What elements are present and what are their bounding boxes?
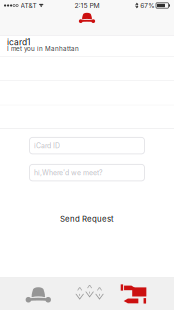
staticText: icard1	[7, 37, 30, 47]
button[interactable]: Send Request	[29, 212, 144, 226]
staticText: AT&T	[21, 1, 37, 9]
staticText: iCard ID	[34, 141, 60, 150]
button[interactable]: icard1	[0, 35, 174, 56]
staticText: I met you in Manhattan	[7, 45, 79, 53]
staticText: hi,Where'd we meet?	[34, 168, 103, 177]
staticText: 2:15 PM	[74, 1, 99, 10]
staticText: 67%	[140, 1, 154, 9]
button[interactable]: Exchange cards	[116, 277, 174, 310]
staticText: Send Request	[60, 214, 114, 224]
button[interactable]: My cards	[0, 277, 58, 310]
button[interactable]: Nearby people	[58, 277, 116, 310]
